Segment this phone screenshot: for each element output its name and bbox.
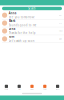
- button[interactable]: Calls: [13, 85, 26, 90]
- staticText: Status: [30, 88, 34, 90]
- staticText: Chats: [4, 88, 8, 90]
- staticText: Sounds good to me: [9, 23, 37, 27]
- button[interactable]: Search: [2, 7, 62, 10]
- staticText: Yest: [59, 30, 62, 32]
- button[interactable]: Chats: [0, 85, 13, 90]
- staticText: 9:41: [59, 14, 62, 16]
- staticText: Search: [28, 7, 36, 10]
- staticText: Tools: [43, 88, 47, 90]
- button[interactable]: Lena: [0, 27, 64, 35]
- staticText: Lena: [9, 27, 16, 31]
- staticText: 8:12: [59, 22, 62, 24]
- button[interactable]: Anna: [0, 11, 64, 19]
- button[interactable]: More: [51, 85, 64, 90]
- staticText: More: [56, 88, 60, 90]
- staticText: Anna: [9, 11, 17, 15]
- staticText: Thanks for the help: [9, 31, 36, 35]
- staticText: Calls: [18, 88, 21, 90]
- staticText: Mark: [9, 19, 16, 23]
- staticText: Mon: [59, 38, 62, 40]
- button[interactable]: Status: [26, 85, 38, 90]
- button[interactable]: Tools: [38, 85, 51, 90]
- staticText: See you tomorrow!: [9, 15, 35, 19]
- staticText: Let's catch up soon: [9, 39, 35, 43]
- staticText: Tom: [9, 35, 15, 39]
- button[interactable]: Mark: [0, 19, 64, 27]
- button[interactable]: Tom: [0, 35, 64, 43]
